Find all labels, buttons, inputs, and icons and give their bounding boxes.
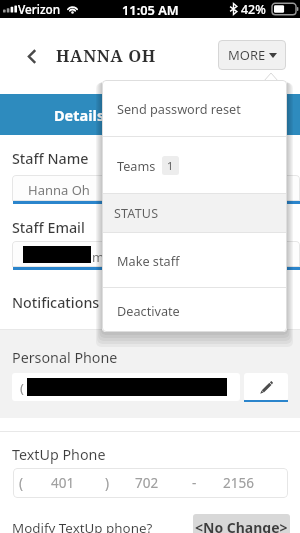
- staticText: (: [20, 379, 24, 397]
- staticText: MORE: [228, 46, 266, 64]
- staticText: ): [105, 474, 110, 492]
- button[interactable]: Deactivate: [102, 288, 287, 332]
- staticText: m: [92, 248, 105, 266]
- staticText: Hanna Oh: [28, 181, 90, 199]
- staticText: Verizon: [18, 1, 61, 17]
- staticText: (: [19, 474, 24, 492]
- staticText: 1: [167, 158, 174, 173]
- staticText: Notifications: [12, 293, 100, 312]
- staticText: TextUp Phone: [12, 445, 106, 464]
- staticText: Teams: [117, 157, 156, 174]
- staticText: 702: [135, 474, 159, 492]
- staticText: Details: [54, 105, 105, 125]
- staticText: 11:05 AM: [122, 1, 179, 18]
- staticText: <No Change>: [195, 518, 288, 533]
- staticText: 2156: [223, 474, 254, 492]
- staticText: STATUS: [114, 205, 159, 222]
- staticText: Make staff: [117, 252, 180, 269]
- staticText: 401: [51, 474, 75, 492]
- staticText: Modify TextUp phone?: [12, 519, 153, 533]
- button[interactable]: Back: [16, 41, 46, 71]
- staticText: HANNA OH: [56, 44, 156, 66]
- button[interactable]: Teams: [102, 137, 287, 193]
- staticText: Send password reset: [117, 100, 241, 117]
- button[interactable]: MORE: [218, 40, 286, 70]
- staticText: Staff Name: [12, 149, 89, 168]
- button[interactable]: <No Change>: [193, 514, 290, 533]
- staticText: -: [192, 474, 197, 492]
- staticText: Deactivate: [117, 302, 180, 319]
- button[interactable]: Edit: [244, 373, 288, 401]
- button[interactable]: Make staff: [102, 233, 287, 287]
- staticText: 42%: [241, 1, 266, 18]
- staticText: Personal Phone: [12, 348, 118, 367]
- button[interactable]: Send password reset: [102, 80, 287, 136]
- staticText: Staff Email: [12, 218, 85, 237]
